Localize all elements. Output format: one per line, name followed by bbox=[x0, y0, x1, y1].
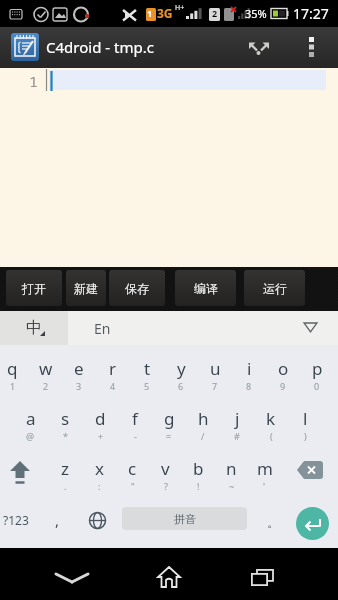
button[interactable] bbox=[232, 559, 292, 597]
button[interactable]: d bbox=[83, 395, 118, 445]
staticText: ( bbox=[270, 430, 273, 442]
button[interactable]: u bbox=[198, 345, 232, 395]
button[interactable] bbox=[297, 35, 327, 65]
staticText: ' bbox=[263, 480, 266, 492]
button[interactable]: m bbox=[248, 445, 281, 495]
staticText: - bbox=[134, 430, 137, 442]
button[interactable] bbox=[296, 507, 329, 540]
staticText: 35% bbox=[245, 6, 267, 21]
staticText: 编译 bbox=[194, 281, 218, 296]
button[interactable]: t bbox=[130, 345, 164, 395]
staticText: u bbox=[210, 357, 221, 380]
button[interactable] bbox=[0, 445, 48, 495]
staticText: 17:27 bbox=[293, 4, 329, 23]
staticText: k bbox=[266, 407, 276, 430]
button[interactable]: 保存 bbox=[109, 270, 165, 306]
button[interactable] bbox=[290, 311, 330, 345]
staticText: 打开 bbox=[22, 281, 46, 296]
button[interactable]: v bbox=[149, 445, 182, 495]
staticText: i bbox=[247, 357, 252, 380]
button[interactable]: b bbox=[182, 445, 215, 495]
staticText: 5 bbox=[144, 380, 150, 392]
staticText: : bbox=[98, 480, 101, 492]
button[interactable] bbox=[281, 445, 338, 495]
staticText: / bbox=[201, 430, 205, 442]
button[interactable]: 。 bbox=[258, 497, 288, 547]
button[interactable]: w bbox=[29, 345, 62, 395]
staticText: # bbox=[234, 430, 240, 442]
staticText: ~ bbox=[229, 480, 235, 492]
button[interactable]: a bbox=[13, 395, 48, 445]
button[interactable]: k bbox=[254, 395, 288, 445]
staticText: + bbox=[98, 430, 104, 442]
button[interactable]: 新建 bbox=[66, 270, 106, 306]
button[interactable] bbox=[139, 558, 199, 596]
staticText: 。 bbox=[267, 514, 280, 530]
staticText: e bbox=[74, 357, 84, 380]
staticText: 2 bbox=[43, 380, 49, 392]
staticText: x bbox=[95, 457, 104, 480]
staticText: j bbox=[235, 407, 240, 430]
staticText: p bbox=[312, 357, 323, 380]
staticText: ?123 bbox=[3, 512, 29, 528]
staticText: 保存 bbox=[125, 281, 149, 296]
button[interactable]: 打开 bbox=[6, 270, 62, 306]
button[interactable]: l bbox=[288, 395, 322, 445]
staticText: 运行 bbox=[263, 281, 287, 296]
staticText: 中 bbox=[26, 318, 42, 338]
staticText: h bbox=[198, 407, 209, 430]
button[interactable]: ?123 bbox=[0, 495, 36, 545]
staticText: ) bbox=[304, 430, 307, 442]
staticText: q bbox=[7, 357, 18, 380]
button[interactable]: i bbox=[232, 345, 266, 395]
staticText: 1 bbox=[29, 71, 39, 91]
staticText: d bbox=[95, 407, 106, 430]
staticText: 拼音 bbox=[174, 512, 196, 526]
button[interactable]: s bbox=[48, 395, 83, 445]
button[interactable]: p bbox=[300, 345, 334, 395]
button[interactable] bbox=[11, 33, 39, 61]
button[interactable]: 中 bbox=[0, 311, 68, 345]
button[interactable]: h bbox=[186, 395, 220, 445]
staticText: . bbox=[64, 480, 67, 492]
staticText: 9 bbox=[280, 380, 286, 392]
staticText: o bbox=[278, 357, 289, 380]
staticText: H+ bbox=[175, 3, 185, 13]
button[interactable] bbox=[246, 36, 273, 58]
button[interactable]: x bbox=[82, 445, 116, 495]
button[interactable]: y bbox=[164, 345, 198, 395]
button[interactable]: En bbox=[68, 311, 136, 345]
staticText: 3G bbox=[157, 5, 173, 21]
button[interactable]: , bbox=[42, 495, 72, 545]
button[interactable]: r bbox=[96, 345, 130, 395]
button[interactable] bbox=[42, 559, 102, 597]
staticText: " bbox=[131, 480, 135, 492]
button[interactable]: j bbox=[220, 395, 254, 445]
staticText: w bbox=[39, 357, 53, 380]
button[interactable]: e bbox=[62, 345, 96, 395]
staticText: z bbox=[61, 457, 69, 480]
staticText: @ bbox=[26, 430, 35, 442]
staticText: g bbox=[164, 407, 175, 430]
staticText: , bbox=[55, 510, 60, 530]
button[interactable]: 运行 bbox=[244, 270, 305, 306]
staticText: t bbox=[144, 357, 151, 380]
button[interactable] bbox=[80, 495, 114, 545]
button[interactable]: c bbox=[116, 445, 149, 495]
staticText: 2 bbox=[212, 7, 218, 19]
staticText: s bbox=[61, 407, 70, 430]
staticText: 3 bbox=[76, 380, 82, 392]
staticText: ! bbox=[197, 480, 200, 492]
button[interactable]: z bbox=[48, 445, 82, 495]
staticText: v bbox=[161, 457, 170, 480]
staticText: * bbox=[63, 430, 68, 442]
button[interactable]: q bbox=[0, 345, 29, 395]
button[interactable]: g bbox=[152, 395, 186, 445]
button[interactable]: o bbox=[266, 345, 300, 395]
button[interactable]: f bbox=[118, 395, 152, 445]
staticText: a bbox=[26, 407, 36, 430]
button[interactable]: 拼音 bbox=[122, 507, 247, 530]
button[interactable]: 编译 bbox=[175, 270, 236, 306]
staticText: C4droid - tmp.c bbox=[46, 37, 154, 57]
button[interactable]: n bbox=[215, 445, 248, 495]
